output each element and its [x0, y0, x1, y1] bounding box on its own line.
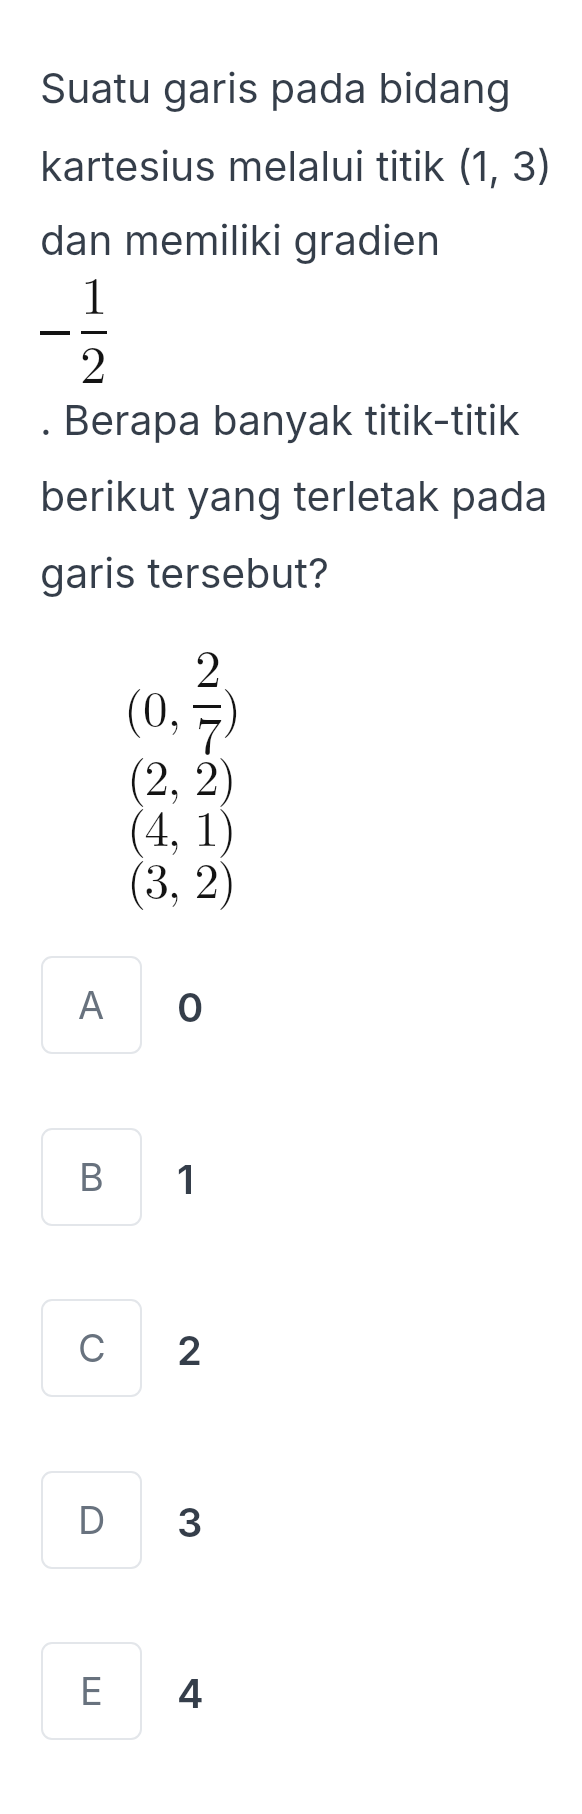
staticText: kartesius melalui titik (1, 3): [40, 141, 552, 191]
staticText: B: [79, 1154, 104, 1200]
staticText: berikut yang terletak pada: [40, 471, 548, 521]
staticText: C: [78, 1325, 106, 1371]
staticText: Suatu garis pada bidang: [40, 63, 511, 113]
staticText: 1: [177, 1155, 194, 1203]
staticText: 7: [196, 695, 223, 769]
staticText: (3, 2): [127, 843, 236, 912]
button[interactable]: A: [40, 956, 542, 1054]
staticText: (2, 2): [127, 740, 236, 809]
staticText: 4: [177, 1669, 204, 1717]
button[interactable]: D: [40, 1471, 542, 1569]
staticText: 1: [81, 254, 108, 329]
staticText: dan memiliki gradien: [40, 215, 441, 265]
staticText: (4, 1): [127, 791, 236, 860]
staticText: 0: [177, 983, 204, 1031]
staticText: 2: [177, 1326, 202, 1374]
staticText: A: [78, 982, 105, 1028]
staticText: E: [80, 1668, 103, 1714]
staticText: garis tersebut?: [40, 548, 329, 598]
staticText: 3: [177, 1498, 203, 1546]
staticText: (0,: [124, 671, 182, 740]
button[interactable]: E: [40, 1642, 542, 1740]
button[interactable]: C: [40, 1299, 542, 1397]
staticText: 2: [195, 628, 222, 702]
staticText: 2: [80, 323, 107, 398]
staticText: . Berapa banyak titik-titik: [40, 395, 521, 445]
staticText: ): [222, 671, 242, 740]
button[interactable]: B: [40, 1128, 542, 1226]
staticText: D: [78, 1497, 106, 1543]
